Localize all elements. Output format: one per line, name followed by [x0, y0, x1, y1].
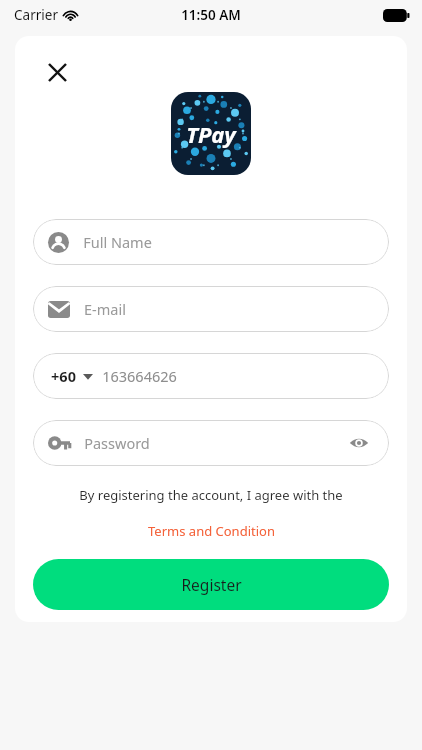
- button[interactable]: Show password: [346, 430, 372, 456]
- button[interactable]: E-mail: [33, 286, 389, 332]
- staticText: 11:50 AM: [181, 6, 241, 24]
- staticText: 163664626: [102, 366, 177, 386]
- staticText: Full Name: [83, 232, 152, 252]
- button[interactable]: Close: [39, 54, 75, 90]
- button[interactable]: Register: [33, 559, 389, 610]
- staticText: By registering the account, I agree with…: [79, 486, 343, 504]
- button[interactable]: +60: [33, 353, 389, 399]
- button[interactable]: Password: [33, 420, 389, 466]
- staticText: E-mail: [84, 299, 126, 319]
- staticText: Register: [181, 574, 242, 595]
- staticText: Terms and Condition: [148, 522, 275, 540]
- staticText: Carrier: [14, 6, 58, 24]
- staticText: TPay: [186, 119, 236, 149]
- button[interactable]: Terms and Condition: [148, 522, 275, 540]
- staticText: Password: [84, 433, 150, 453]
- button[interactable]: Full Name: [33, 219, 389, 265]
- staticText: +60: [51, 366, 76, 386]
